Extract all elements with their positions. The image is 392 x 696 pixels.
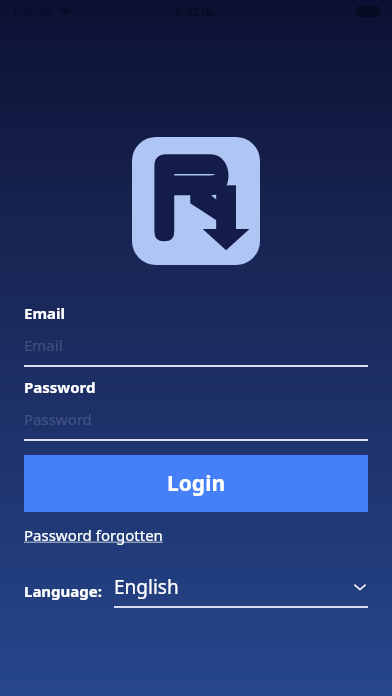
button[interactable]: English xyxy=(114,574,368,608)
staticText: Email xyxy=(24,335,63,355)
other: Select language xyxy=(352,579,368,595)
staticText: Language: xyxy=(24,581,102,601)
button[interactable]: Password xyxy=(24,409,368,441)
staticText: Password xyxy=(24,409,92,429)
staticText: Carrier xyxy=(14,3,54,19)
staticText: Login xyxy=(167,469,226,498)
button[interactable]: Password forgotten xyxy=(24,522,163,548)
staticText: Password forgotten xyxy=(24,525,163,545)
staticText: Password xyxy=(24,377,96,397)
staticText: English xyxy=(114,574,179,600)
button[interactable]: Login xyxy=(24,455,368,512)
button[interactable]: Email xyxy=(24,335,368,367)
staticText: 6.32 ip. xyxy=(175,3,217,19)
staticText: Email xyxy=(24,303,65,323)
